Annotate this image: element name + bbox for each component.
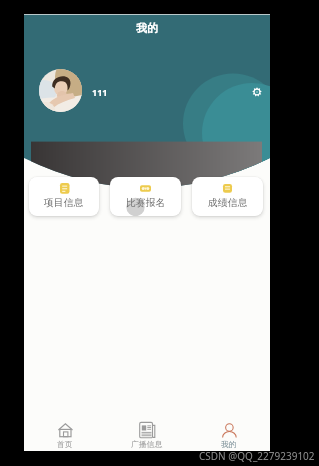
staticText: 我的 [221, 439, 237, 449]
button[interactable]: 首页 [24, 415, 106, 451]
button[interactable]: 我的 [188, 415, 270, 451]
button[interactable]: 成绩信息 [192, 177, 263, 216]
staticText: 首页 [57, 439, 73, 449]
button[interactable]: 项目信息 [29, 177, 99, 216]
staticText: 项目信息 [44, 197, 84, 209]
staticText: 111 [92, 86, 108, 98]
staticText: CSDN @QQ_2279239102 [199, 449, 315, 463]
button[interactable]: Profile photo [39, 69, 82, 112]
staticText: 比赛报名 [126, 197, 166, 209]
button[interactable]: 比赛报名 [110, 177, 181, 216]
staticText: 我的 [136, 21, 158, 35]
staticText: 成绩信息 [208, 197, 248, 209]
button[interactable]: Settings [250, 85, 264, 99]
button[interactable]: 广播信息 [106, 415, 188, 451]
staticText: 广播信息 [131, 439, 163, 449]
